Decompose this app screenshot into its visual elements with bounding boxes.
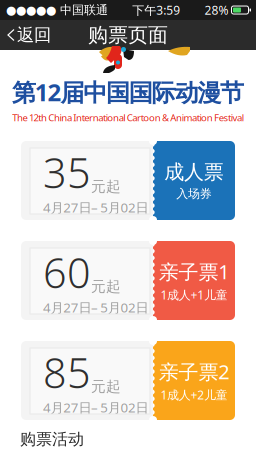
staticText: 成人票 — [164, 160, 224, 184]
staticText: 亲子票1 — [159, 258, 229, 285]
staticText: 85 — [43, 345, 91, 400]
staticText: 购票页面 — [88, 23, 168, 47]
staticText: 4月27日– 5月02日 — [43, 199, 149, 216]
staticText: ●●●●● 中国联通 — [6, 3, 108, 17]
staticText: The 12th China International Cartoon & A… — [12, 111, 244, 124]
staticText: 购票活动 — [20, 429, 84, 449]
staticText: 元起 — [91, 178, 121, 196]
staticText: 28% — [204, 2, 228, 18]
button[interactable]: 85 — [21, 341, 235, 420]
button[interactable]: 购票活动 — [20, 429, 84, 449]
staticText: 1成人+2儿童 — [160, 387, 228, 403]
staticText: 60 — [43, 245, 91, 300]
staticText: 亲子票2 — [159, 358, 229, 385]
staticText: 35 — [43, 145, 91, 200]
staticText: 4月27日– 5月02日 — [43, 299, 149, 316]
staticText: 第12届中国国际动漫节 — [12, 76, 244, 108]
staticText: 下午3:59 — [132, 2, 180, 18]
button[interactable]: 35 — [21, 141, 235, 220]
staticText: 入场券 — [176, 186, 212, 201]
staticText: 元起 — [91, 278, 121, 296]
staticText: 4月27日– 5月02日 — [43, 399, 149, 416]
staticText: 元起 — [91, 378, 121, 396]
staticText: 返回 — [17, 24, 51, 46]
staticText: 1成人+1儿童 — [160, 287, 228, 303]
button[interactable]: 返回 — [0, 20, 59, 50]
button[interactable]: 60 — [21, 241, 235, 320]
